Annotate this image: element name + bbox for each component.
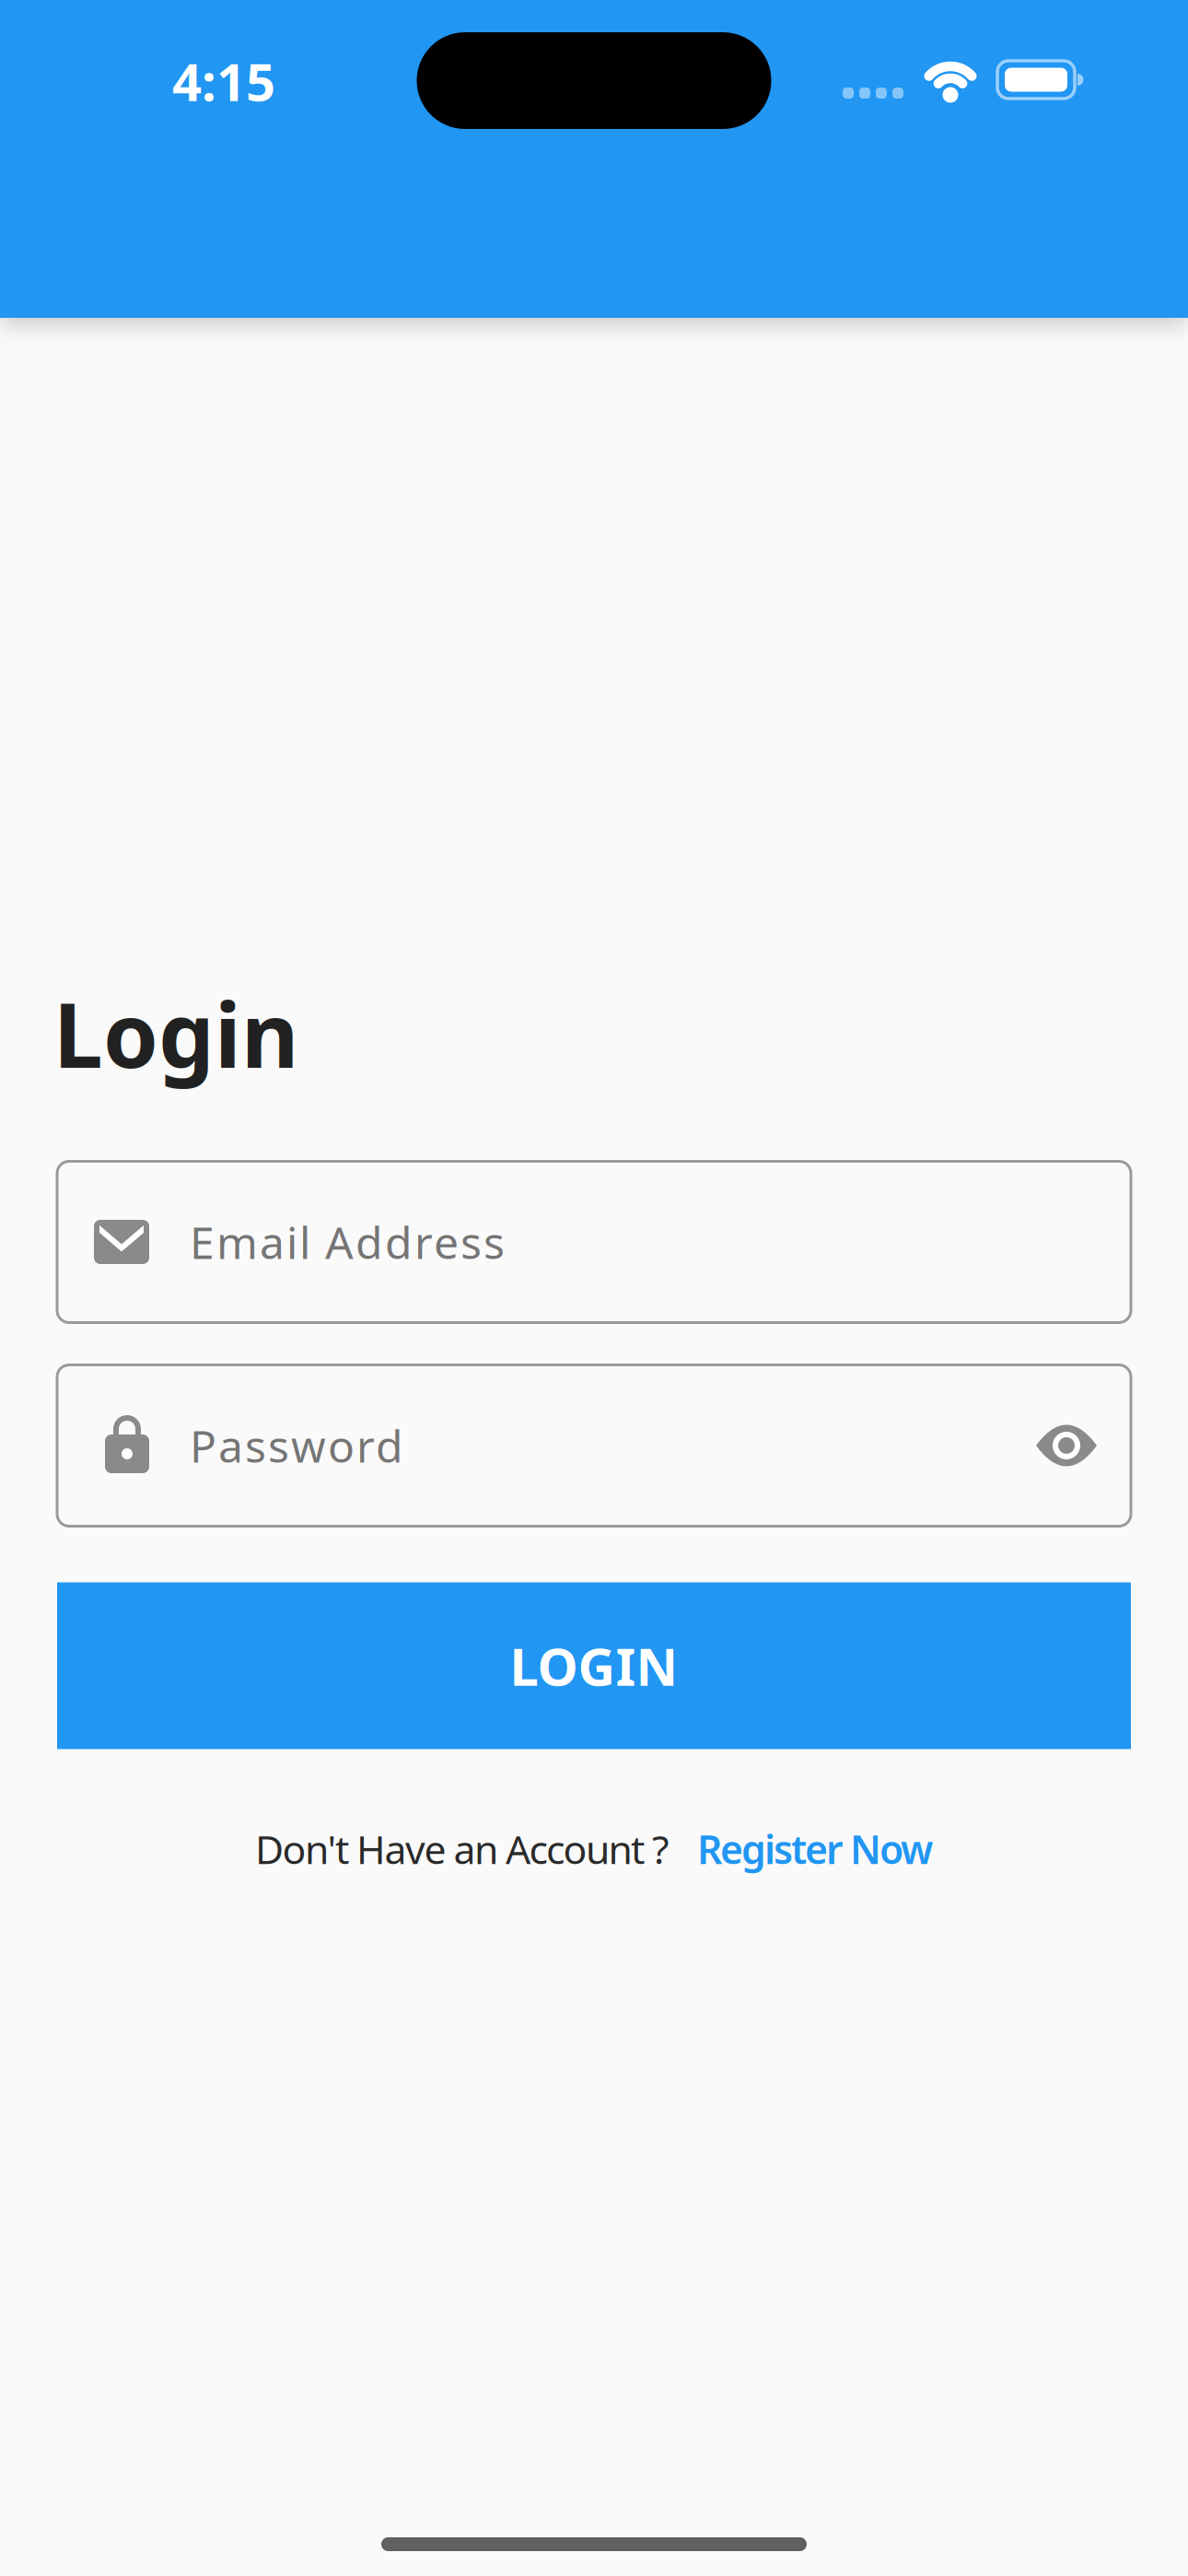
staticText: Email Address [190,1213,505,1271]
staticText: Don't Have an Account ? [255,1823,670,1875]
button[interactable]: Register Now [697,1823,933,1875]
staticText: Register Now [697,1823,933,1875]
staticText: Login [53,975,298,1092]
button[interactable]: Password [57,1365,1131,1526]
button[interactable]: LOGIN [57,1582,1131,1749]
button[interactable]: Email Address [57,1161,1131,1323]
staticText: Password [190,1416,403,1475]
staticText: LOGIN [510,1631,678,1700]
staticText: 4:15 [172,47,275,115]
